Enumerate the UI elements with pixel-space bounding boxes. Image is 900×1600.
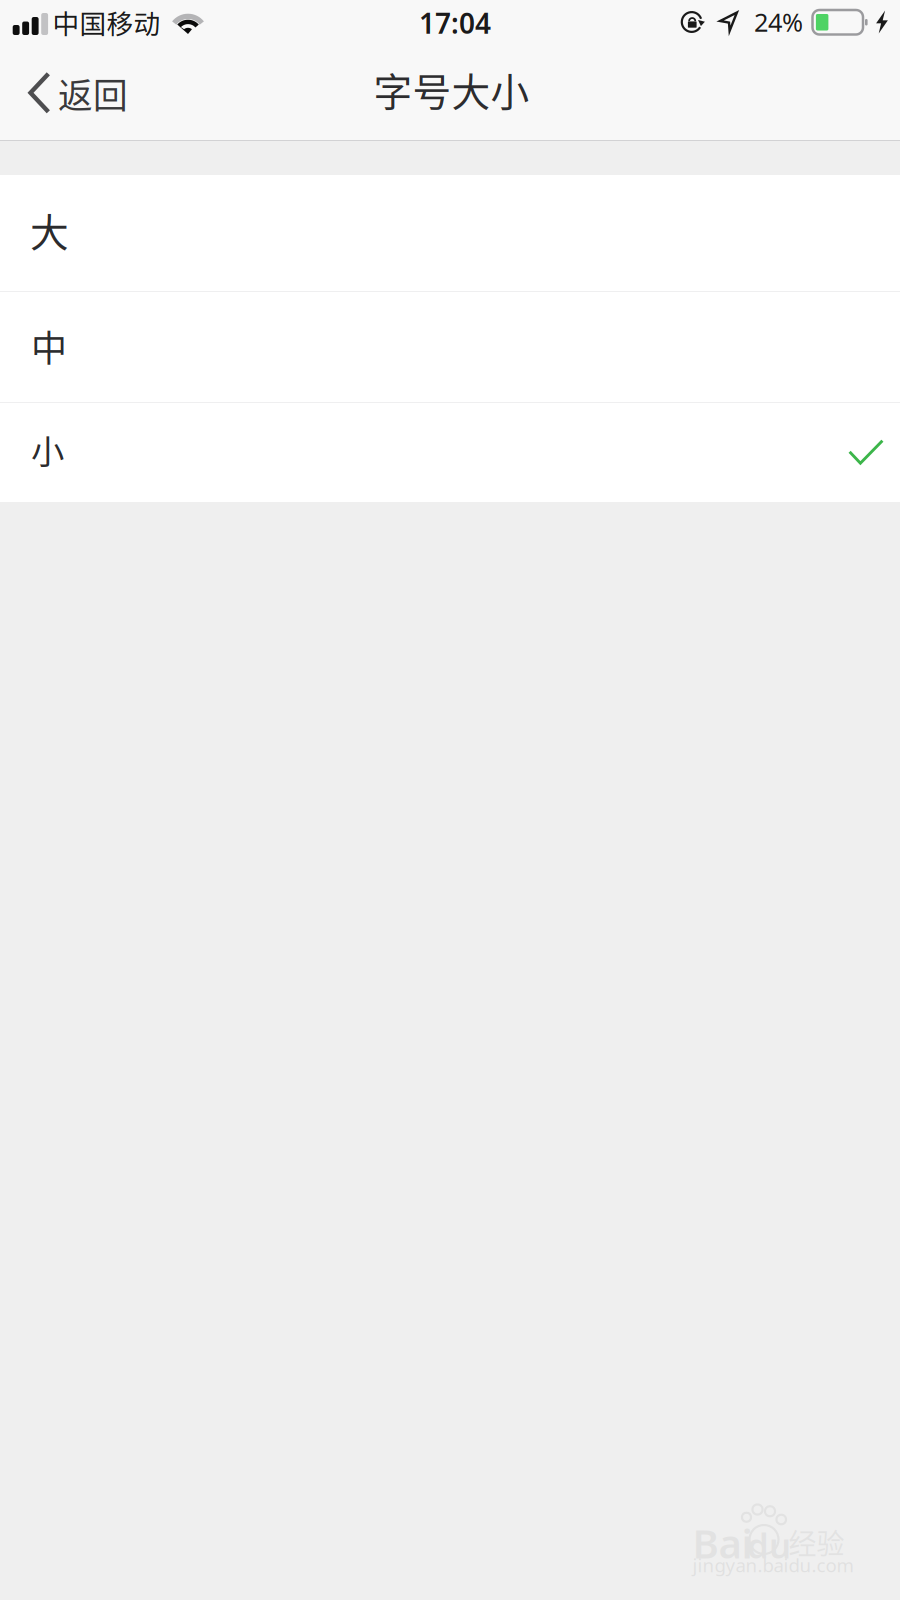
staticText: du <box>747 1522 791 1568</box>
button[interactable]: 中 <box>0 292 900 402</box>
staticText: 大 <box>30 202 69 258</box>
staticText: 经验 <box>788 1522 844 1562</box>
staticText: 24% <box>754 5 803 39</box>
button[interactable]: 大 <box>0 175 900 291</box>
staticText: Bai <box>692 1516 752 1569</box>
button[interactable]: 返回 <box>0 52 126 140</box>
staticText: 17:04 <box>419 4 491 42</box>
button[interactable]: 小 <box>0 403 900 502</box>
staticText: 返回 <box>58 68 128 119</box>
staticText: 中 <box>31 320 67 372</box>
staticText: 中国移动 <box>52 3 160 41</box>
staticText: 字号大小 <box>373 61 529 117</box>
staticText: jingyan.baidu.com <box>692 1553 853 1577</box>
staticText: 小 <box>31 425 64 474</box>
